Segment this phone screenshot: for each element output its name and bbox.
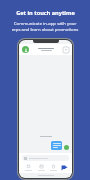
button[interactable]: Account: [48, 164, 59, 171]
staticText: Get in touch anytime: [16, 9, 75, 17]
button[interactable]: [51, 141, 62, 150]
staticText: Communicate in-app with your reps and le…: [10, 20, 80, 32]
button[interactable]: Messages: [61, 164, 68, 171]
button[interactable]: Orders: [36, 164, 47, 171]
button[interactable]: Favorites: [23, 164, 34, 171]
button[interactable]: Profile: [22, 46, 29, 53]
button[interactable]: [22, 155, 69, 161]
button[interactable]: More options: [63, 47, 69, 53]
